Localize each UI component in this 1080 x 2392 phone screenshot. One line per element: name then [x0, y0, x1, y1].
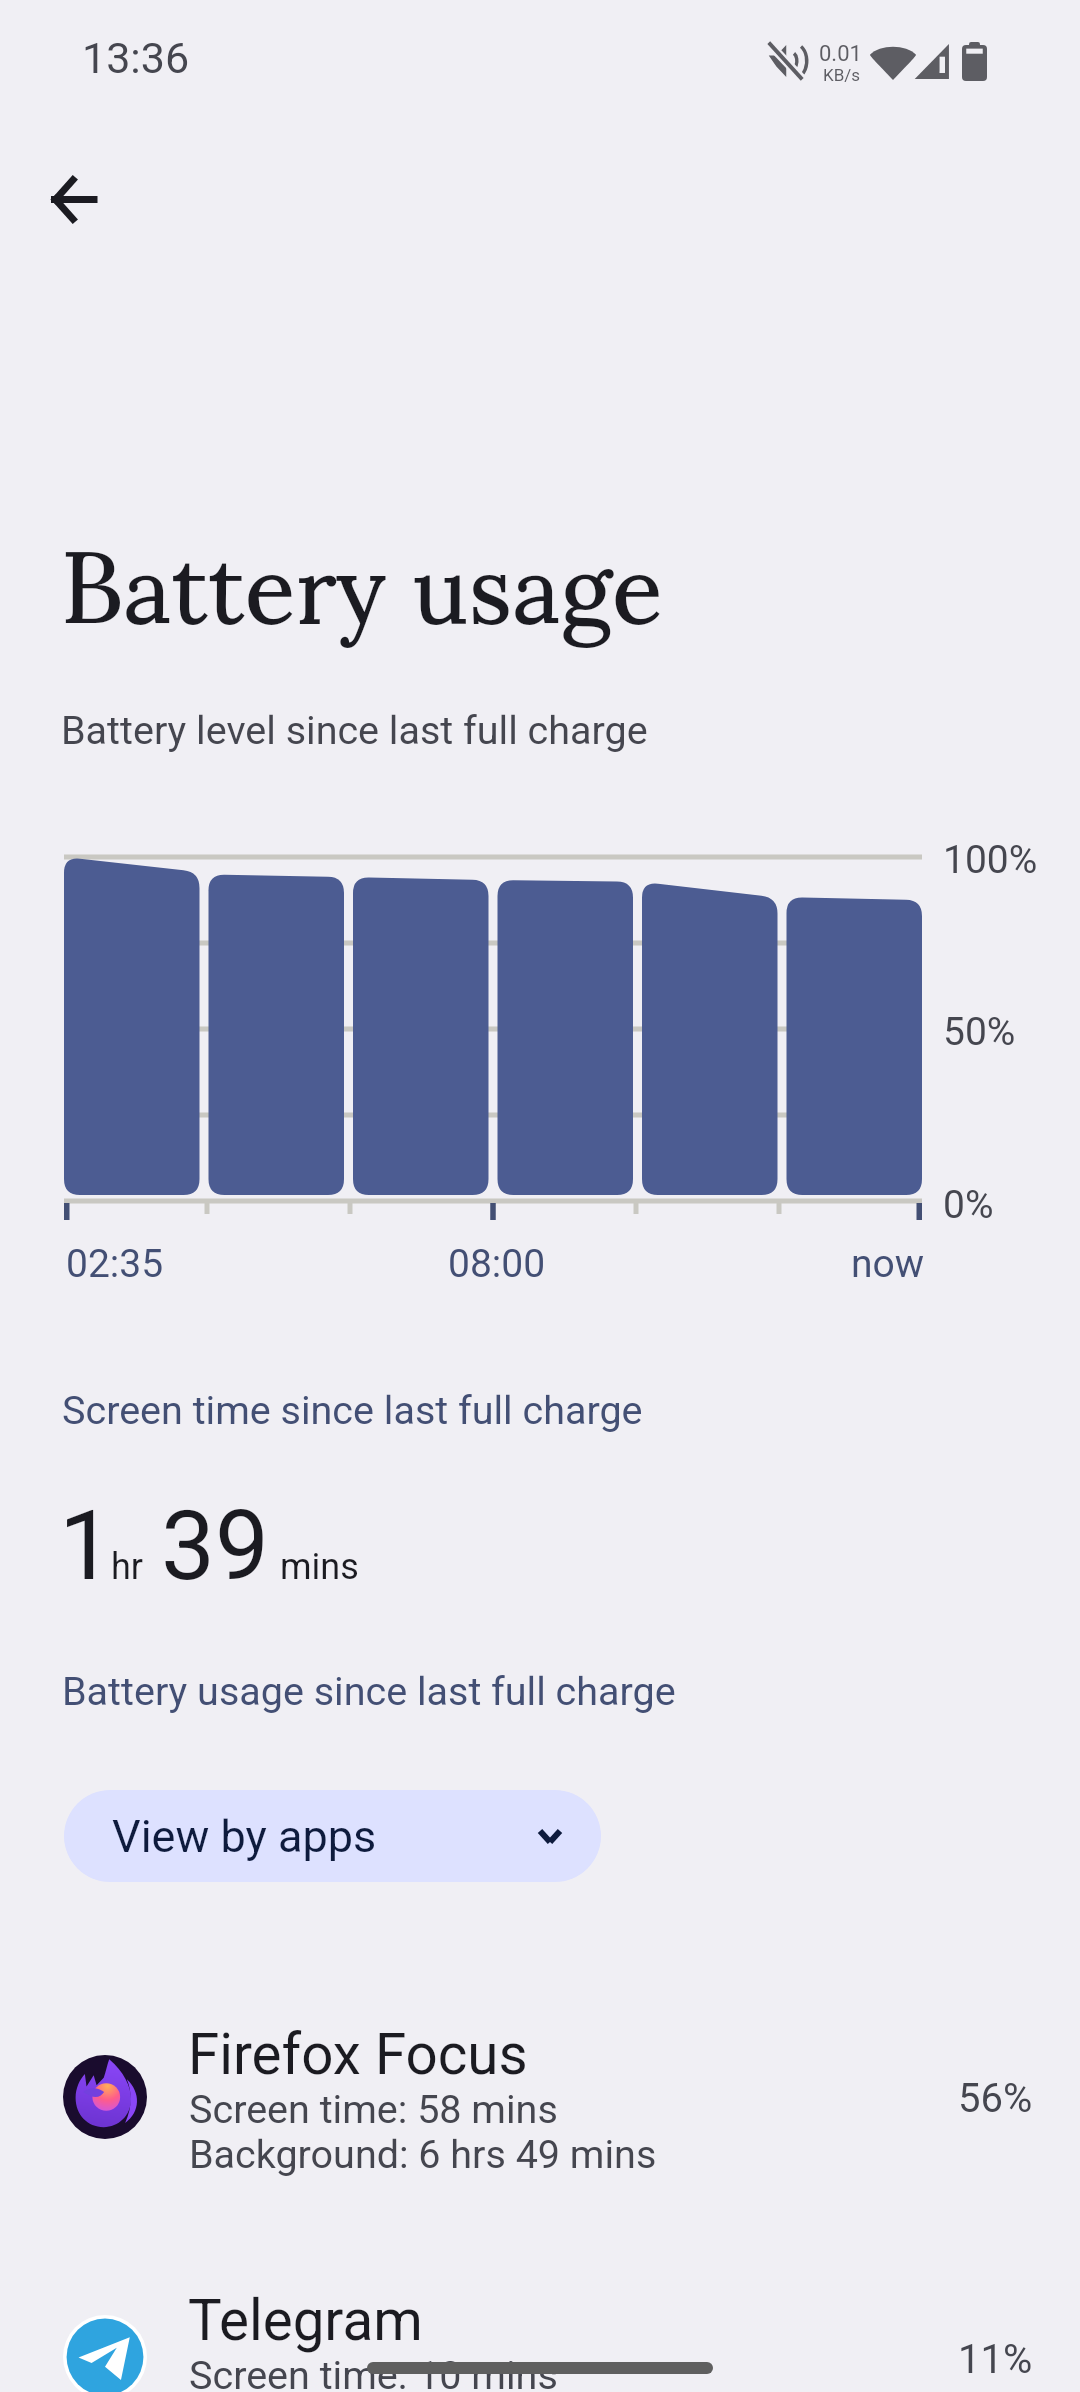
button[interactable]: Telegram — [0, 2288, 1080, 2392]
staticText: 08:00 — [448, 1241, 546, 1287]
staticText: now — [851, 1241, 925, 1287]
button[interactable]: Firefox Focus — [0, 2022, 1080, 2197]
staticText: Battery usage since last full charge — [62, 1668, 676, 1714]
staticText: Screen time: 10 mins — [189, 2352, 558, 2392]
button[interactable]: View by apps — [64, 1790, 601, 1882]
staticText: 1 — [59, 1490, 113, 1590]
staticText: 56% — [958, 2075, 1033, 2122]
staticText: 13:36 — [82, 33, 190, 83]
staticText: Background: 6 hrs 49 mins — [189, 2131, 657, 2177]
staticText: 50% — [943, 1009, 1016, 1055]
staticText: 39 — [161, 1490, 269, 1590]
staticText: 0.01 — [819, 41, 862, 67]
staticText: View by apps — [112, 1810, 377, 1863]
staticText: Firefox Focus — [188, 2022, 528, 2088]
staticText: 02:35 — [66, 1241, 164, 1287]
button[interactable]: Back — [8, 134, 138, 264]
staticText: mins — [280, 1546, 359, 1588]
staticText: KB/s — [823, 65, 861, 85]
staticText: 100% — [943, 837, 1038, 883]
staticText: Screen time: 58 mins — [189, 2086, 558, 2132]
staticText: hr — [111, 1546, 144, 1588]
staticText: 11% — [958, 2336, 1033, 2383]
staticText: Screen time since last full charge — [62, 1387, 643, 1433]
staticText: Telegram — [188, 2288, 423, 2354]
staticText: Battery level since last full charge — [61, 707, 648, 753]
staticText: 0% — [943, 1182, 994, 1228]
staticText: Battery usage — [61, 431, 663, 724]
